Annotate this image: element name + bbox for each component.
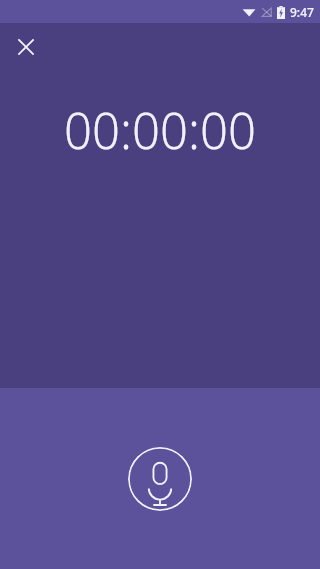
button[interactable]: Close xyxy=(8,29,44,65)
staticText: 00:00:00 xyxy=(0,97,320,164)
staticText: 9:47 xyxy=(290,4,314,20)
button[interactable]: Start voice recording xyxy=(128,447,192,511)
